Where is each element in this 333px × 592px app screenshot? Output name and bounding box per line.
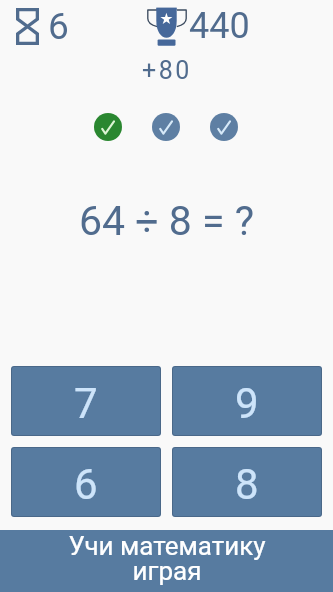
- staticText: 6: [74, 460, 98, 509]
- button[interactable]: 7: [11, 366, 161, 436]
- button[interactable]: 8: [172, 447, 322, 517]
- staticText: 6: [48, 5, 69, 48]
- staticText: 8: [235, 460, 259, 509]
- staticText: 64 ÷ 8 = ?: [79, 197, 255, 245]
- button[interactable]: [94, 113, 122, 141]
- other: Trophy: [147, 7, 187, 46]
- button[interactable]: Учи математику играя: [0, 530, 333, 592]
- staticText: 9: [235, 379, 259, 428]
- staticText: 440: [189, 5, 250, 47]
- staticText: 7: [74, 379, 98, 428]
- button[interactable]: 9: [172, 366, 322, 436]
- button[interactable]: [210, 113, 238, 141]
- staticText: +80: [142, 56, 192, 85]
- button[interactable]: 6: [11, 447, 161, 517]
- staticText: Учи математику играя: [61, 531, 273, 586]
- button[interactable]: [152, 113, 180, 141]
- other: Timer: [16, 8, 39, 45]
